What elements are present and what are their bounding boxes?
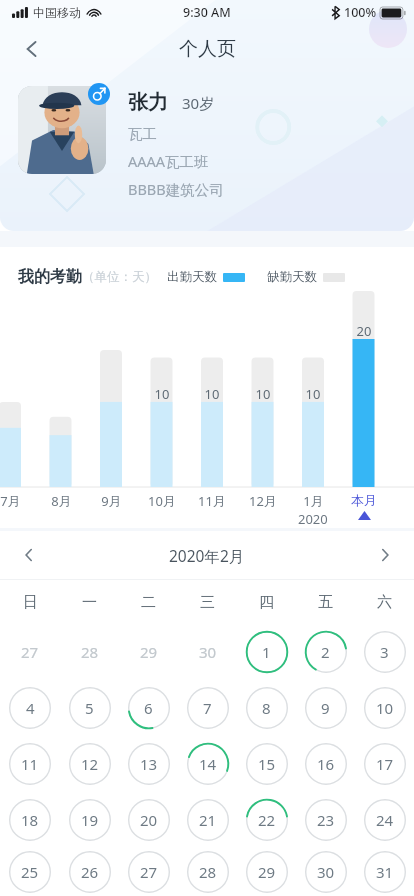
- staticText: 我的考勤: [18, 267, 82, 287]
- button[interactable]: Previous month: [8, 534, 50, 576]
- staticText: 5: [85, 698, 94, 718]
- staticText: 30: [317, 862, 335, 882]
- button[interactable]: 12: [60, 736, 119, 792]
- staticText: 16: [317, 754, 335, 774]
- button[interactable]: 17: [355, 736, 414, 792]
- button[interactable]: 29: [119, 624, 178, 680]
- button[interactable]: 7: [178, 680, 237, 736]
- button[interactable]: 27: [119, 848, 178, 896]
- button[interactable]: Back: [10, 27, 54, 71]
- button[interactable]: 5: [60, 680, 119, 736]
- staticText: 个人页: [179, 37, 236, 61]
- staticText: 四: [259, 593, 274, 612]
- staticText: 7: [203, 698, 212, 718]
- button[interactable]: 30: [296, 848, 355, 896]
- staticText: 30岁: [182, 93, 215, 113]
- staticText: 4: [26, 698, 35, 718]
- button[interactable]: 18: [0, 792, 60, 848]
- button[interactable]: 14: [178, 736, 237, 792]
- staticText: 三: [200, 593, 215, 612]
- button[interactable]: 22: [237, 792, 296, 848]
- button[interactable]: 19: [60, 792, 119, 848]
- staticText: 10: [151, 385, 173, 403]
- staticText: 21: [199, 810, 217, 830]
- staticText: 瓦工: [128, 125, 157, 143]
- staticText: 一: [82, 593, 97, 612]
- staticText: 10: [252, 385, 274, 403]
- staticText: 30: [199, 642, 217, 662]
- staticText: 18: [21, 810, 39, 830]
- staticText: 20: [140, 810, 158, 830]
- staticText: 6: [144, 698, 153, 718]
- button[interactable]: 24: [355, 792, 414, 848]
- staticText: 27: [140, 862, 158, 882]
- staticText: 2020年2月: [169, 545, 245, 566]
- button[interactable]: 23: [296, 792, 355, 848]
- button[interactable]: 28: [178, 848, 237, 896]
- staticText: 1月: [303, 492, 324, 510]
- staticText: 7月: [0, 492, 21, 510]
- staticText: 六: [377, 593, 392, 612]
- staticText: 五: [318, 593, 333, 612]
- staticText: 25: [21, 862, 39, 882]
- staticText: 17: [376, 754, 394, 774]
- staticText: 中国移动: [33, 5, 81, 20]
- staticText: 29: [140, 642, 158, 662]
- button[interactable]: 27: [0, 624, 60, 680]
- staticText: 1: [262, 642, 271, 662]
- staticText: 26: [81, 862, 99, 882]
- staticText: 张力: [128, 90, 168, 115]
- button[interactable]: 28: [60, 624, 119, 680]
- button[interactable]: 16: [296, 736, 355, 792]
- staticText: 2: [321, 642, 330, 662]
- button[interactable]: 29: [237, 848, 296, 896]
- button[interactable]: Avatar: [18, 86, 106, 174]
- staticText: AAAA瓦工班: [128, 151, 209, 171]
- button[interactable]: 8: [237, 680, 296, 736]
- staticText: 31: [376, 862, 394, 882]
- staticText: 2020: [298, 510, 328, 528]
- staticText: 28: [81, 642, 99, 662]
- staticText: 13: [140, 754, 158, 774]
- staticText: 9月: [101, 492, 122, 510]
- staticText: 19: [81, 810, 99, 830]
- staticText: 10月: [148, 492, 176, 510]
- button[interactable]: 20: [119, 792, 178, 848]
- button[interactable]: 31: [355, 848, 414, 896]
- button[interactable]: 13: [119, 736, 178, 792]
- button[interactable]: 2: [296, 624, 355, 680]
- button[interactable]: Next month: [364, 534, 406, 576]
- button[interactable]: 4: [0, 680, 60, 736]
- button[interactable]: 3: [355, 624, 414, 680]
- staticText: 11: [21, 754, 39, 774]
- staticText: 缺勤天数: [267, 269, 317, 285]
- button[interactable]: 15: [237, 736, 296, 792]
- staticText: （单位：天）: [82, 269, 157, 285]
- staticText: 3: [380, 642, 389, 662]
- staticText: 100%: [344, 4, 377, 21]
- staticText: 20: [353, 322, 375, 340]
- staticText: 12: [81, 754, 99, 774]
- staticText: 9: [321, 698, 330, 718]
- staticText: 29: [258, 862, 276, 882]
- button[interactable]: 26: [60, 848, 119, 896]
- staticText: 10: [302, 385, 324, 403]
- button[interactable]: 30: [178, 624, 237, 680]
- staticText: 11月: [198, 492, 226, 510]
- staticText: 二: [141, 593, 156, 612]
- staticText: 本月: [351, 492, 377, 508]
- staticText: 8: [262, 698, 271, 718]
- staticText: 27: [21, 642, 39, 662]
- button[interactable]: 10: [355, 680, 414, 736]
- button[interactable]: 25: [0, 848, 60, 896]
- staticText: 28: [199, 862, 217, 882]
- button[interactable]: 21: [178, 792, 237, 848]
- staticText: 15: [258, 754, 276, 774]
- staticText: 12月: [249, 492, 277, 510]
- staticText: 14: [199, 754, 217, 774]
- button[interactable]: 11: [0, 736, 60, 792]
- button[interactable]: 6: [119, 680, 178, 736]
- staticText: 23: [317, 810, 335, 830]
- button[interactable]: 9: [296, 680, 355, 736]
- button[interactable]: 1: [237, 624, 296, 680]
